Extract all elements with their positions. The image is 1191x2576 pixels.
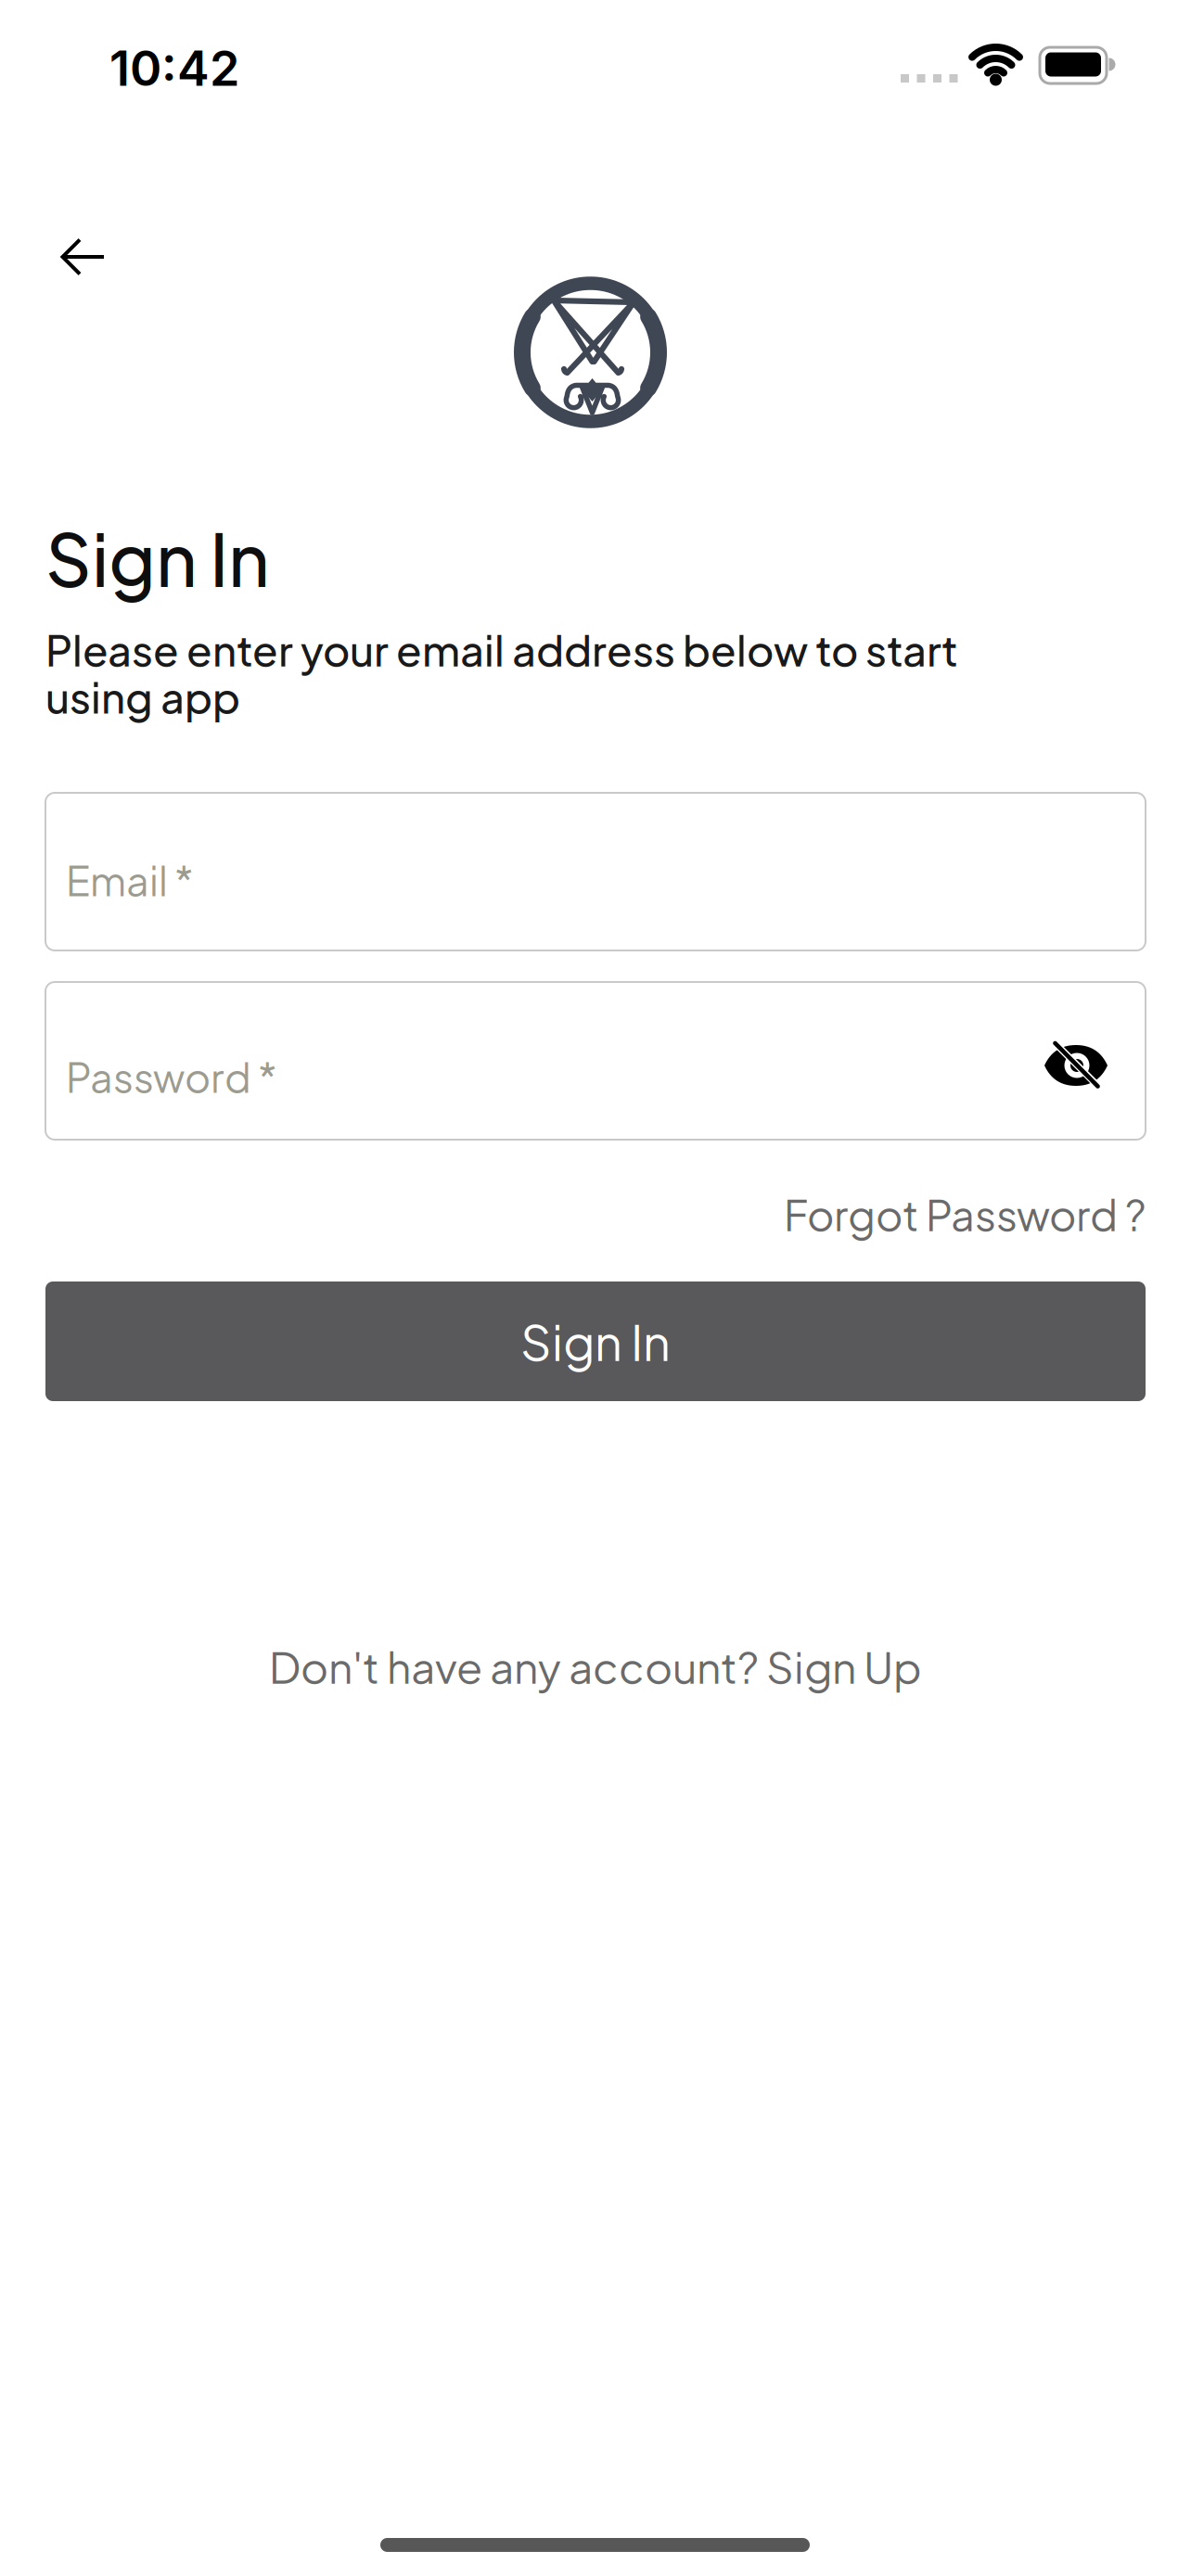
button[interactable]: Sign In bbox=[45, 1282, 1146, 1401]
staticText: 10:42 bbox=[109, 39, 239, 97]
staticText: Sign In bbox=[520, 1311, 671, 1372]
staticText: Don't have any account? Sign Up bbox=[269, 1639, 922, 1693]
staticText: Password * bbox=[66, 1051, 277, 1102]
staticText: Forgot Password ? bbox=[784, 1188, 1146, 1240]
button[interactable]: Back bbox=[43, 223, 121, 291]
staticText: Sign In bbox=[45, 513, 270, 603]
button[interactable]: Don't have any account? Sign Up bbox=[269, 1639, 922, 1693]
staticText: Please enter your email address below to… bbox=[45, 623, 958, 723]
secureTextField[interactable]: Password * bbox=[66, 1051, 1166, 1102]
button[interactable]: Forgot Password ? bbox=[784, 1188, 1146, 1240]
button[interactable]: Show password bbox=[1026, 1020, 1126, 1113]
staticText: Email * bbox=[66, 855, 194, 905]
textField[interactable]: Email * bbox=[66, 855, 1166, 905]
